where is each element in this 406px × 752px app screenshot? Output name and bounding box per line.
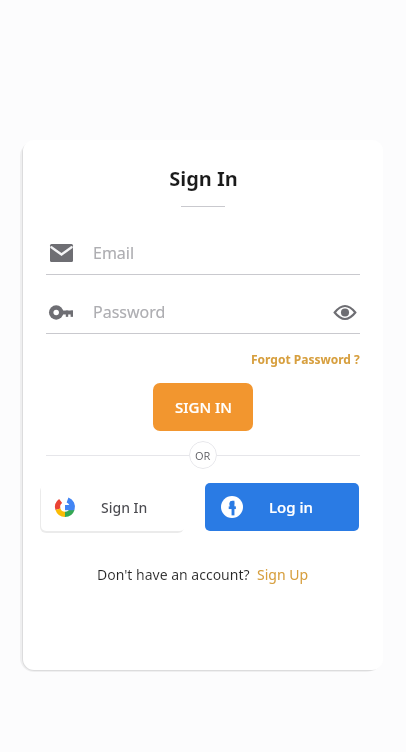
button[interactable]: SIGN IN (153, 383, 253, 431)
button[interactable]: Log in (205, 483, 359, 531)
button[interactable]: Password (46, 297, 360, 327)
staticText: Forgot Password ? (251, 351, 360, 367)
button[interactable]: Email (46, 238, 360, 268)
staticText: Don't have an account? (97, 565, 250, 584)
button[interactable]: Sign In (41, 483, 185, 531)
staticText: SIGN IN (175, 397, 232, 417)
staticText: Email (93, 242, 135, 264)
staticText: OR (195, 448, 211, 463)
other: Show password (334, 305, 356, 320)
staticText: Log in (269, 497, 313, 517)
button[interactable]: Sign Up (256, 562, 310, 587)
staticText: Sign Up (257, 565, 309, 584)
button[interactable]: Forgot Password ? (228, 348, 383, 370)
staticText: Sign In (101, 498, 148, 517)
staticText: Password (93, 301, 166, 323)
staticText: Sign In (169, 165, 238, 192)
